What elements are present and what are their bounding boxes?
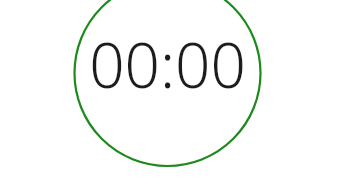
button[interactable]: Timer 00:00, tap to start — [0, 0, 340, 192]
staticText: 00:00 — [89, 22, 246, 106]
